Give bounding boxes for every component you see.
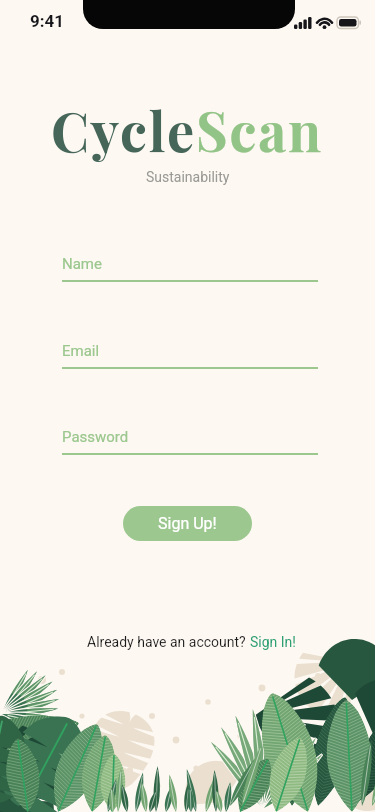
staticText: Sustainability <box>146 169 230 185</box>
button[interactable]: Sign In! <box>250 634 296 650</box>
button[interactable]: Sign Up! <box>123 506 252 541</box>
staticText: Already have an account? <box>87 634 250 650</box>
staticText: 9:41 <box>30 11 65 31</box>
button[interactable]: Email <box>62 342 318 369</box>
staticText: CycleScan <box>51 94 324 166</box>
staticText: Email <box>62 342 100 360</box>
staticText: Password <box>62 428 129 446</box>
staticText: Name <box>62 255 102 273</box>
button[interactable]: Password <box>62 428 318 455</box>
staticText: Sign Up! <box>158 514 217 533</box>
button[interactable]: Name <box>62 255 318 282</box>
staticText: Sign In! <box>250 634 296 650</box>
